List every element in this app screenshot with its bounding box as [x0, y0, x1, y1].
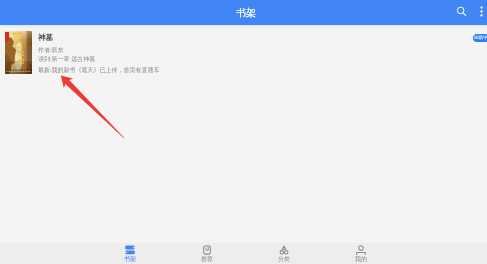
- staticText: 连载中: [474, 35, 487, 41]
- button[interactable]: 我的: [322, 243, 399, 264]
- button[interactable]: Search: [450, 0, 472, 22]
- staticText: 书架: [124, 255, 136, 263]
- staticText: 最新:我的新书《遮天》已上传，首页有直通车: [38, 66, 160, 74]
- button[interactable]: More options: [470, 0, 487, 22]
- staticText: 神墓: [38, 33, 54, 43]
- staticText: 我的: [355, 255, 367, 263]
- button[interactable]: 连载中: [473, 34, 487, 42]
- button[interactable]: 神墓: [0, 25, 487, 81]
- staticText: 读到:第一章 远古神墓: [38, 55, 96, 63]
- staticText: 分类: [278, 255, 290, 263]
- button[interactable]: 推荐: [168, 243, 245, 264]
- staticText: 书架: [236, 6, 256, 19]
- button[interactable]: 书架: [91, 243, 168, 264]
- button[interactable]: 分类: [245, 243, 322, 264]
- staticText: 推荐: [201, 255, 213, 263]
- staticText: 作者:辰东: [38, 46, 64, 54]
